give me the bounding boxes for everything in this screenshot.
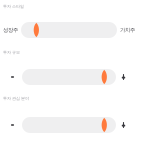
button[interactable] (3, 117, 141, 133)
staticText: 투자 관심 분야 (3, 96, 29, 101)
staticText: 투자 스타일 (3, 4, 24, 9)
button[interactable] (3, 69, 141, 85)
staticText: 가치주 (120, 27, 135, 33)
staticText: 성장주 (3, 27, 18, 33)
staticText: 투자 규모 (3, 50, 20, 55)
button[interactable]: 성장주 (3, 22, 141, 38)
